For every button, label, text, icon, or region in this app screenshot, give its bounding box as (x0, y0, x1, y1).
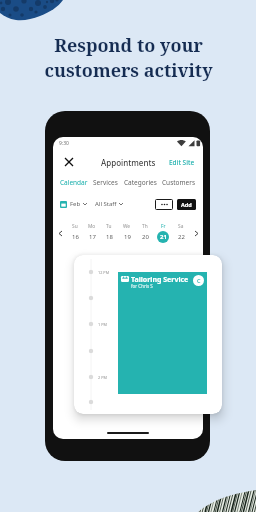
button[interactable]: Th (136, 223, 154, 243)
staticText: Tailoring Service (131, 275, 189, 285)
staticText: 19 (124, 233, 131, 241)
staticText: 17 (89, 233, 96, 241)
staticText: 9:30 (59, 140, 69, 147)
staticText: Respond to your (54, 33, 203, 58)
button[interactable]: Customers (162, 178, 196, 187)
button[interactable]: Fr (154, 223, 172, 243)
button[interactable]: Sa (172, 223, 190, 243)
staticText: 12 PM (98, 270, 110, 275)
button[interactable]: Calendar (60, 178, 88, 187)
button[interactable]: Add (177, 199, 196, 210)
staticText: 22 (178, 233, 185, 241)
staticText: C (197, 277, 201, 284)
staticText: Tu (106, 223, 112, 230)
staticText: We (123, 223, 131, 230)
staticText: Su (72, 223, 78, 230)
button[interactable]: Previous week (55, 226, 65, 240)
staticText: Fr (161, 223, 166, 230)
button[interactable]: Su (66, 223, 83, 243)
staticText: 2 PM (98, 375, 107, 380)
button[interactable]: Customer Chris S (193, 275, 204, 286)
staticText: 20 (142, 233, 149, 241)
staticText: 18 (106, 233, 113, 241)
button[interactable]: Close (61, 154, 77, 170)
button[interactable]: Mo (83, 223, 100, 243)
button[interactable]: We (118, 223, 136, 243)
staticText: Customers (162, 178, 196, 187)
staticText: 16 (72, 233, 79, 241)
button[interactable]: Tailoring Service (118, 272, 207, 394)
staticText: 21 (160, 233, 167, 241)
staticText: Sa (178, 223, 184, 230)
staticText: Edit Site (169, 158, 195, 167)
button[interactable]: More options (155, 199, 173, 210)
button[interactable]: Tu (100, 223, 118, 243)
staticText: Add (181, 201, 192, 208)
staticText: Feb (70, 200, 81, 208)
staticText: All Staff (95, 200, 117, 208)
staticText: Mo (88, 223, 96, 230)
button[interactable]: Edit Site (169, 158, 195, 167)
button[interactable]: Categories (124, 178, 157, 187)
staticText: Services (93, 178, 118, 187)
button[interactable]: Next week (191, 226, 201, 240)
button[interactable]: Services (93, 178, 118, 187)
staticText: for Chris S (131, 283, 153, 289)
staticText: Categories (124, 178, 157, 187)
staticText: Th (142, 223, 148, 230)
staticText: Calendar (60, 178, 88, 187)
staticText: customers activity (44, 58, 213, 83)
staticText: Appointments (101, 157, 156, 168)
staticText: 1 PM (98, 322, 107, 327)
